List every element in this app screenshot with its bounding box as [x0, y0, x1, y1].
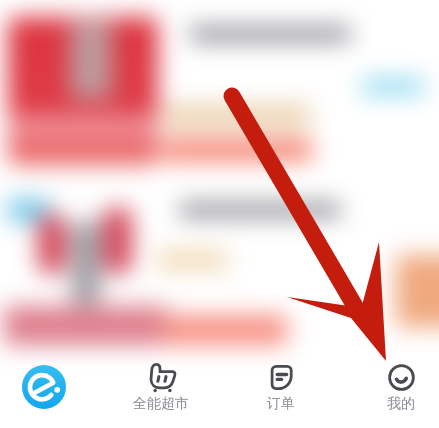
staticText: 我的 — [387, 395, 415, 413]
button[interactable]: 订单 — [226, 355, 336, 428]
button[interactable]: Home — [0, 355, 96, 428]
staticText: 订单 — [267, 395, 295, 413]
button[interactable]: 我的 — [346, 355, 439, 428]
button[interactable]: 全能超市 — [106, 355, 216, 428]
staticText: 全能超市 — [133, 395, 189, 413]
